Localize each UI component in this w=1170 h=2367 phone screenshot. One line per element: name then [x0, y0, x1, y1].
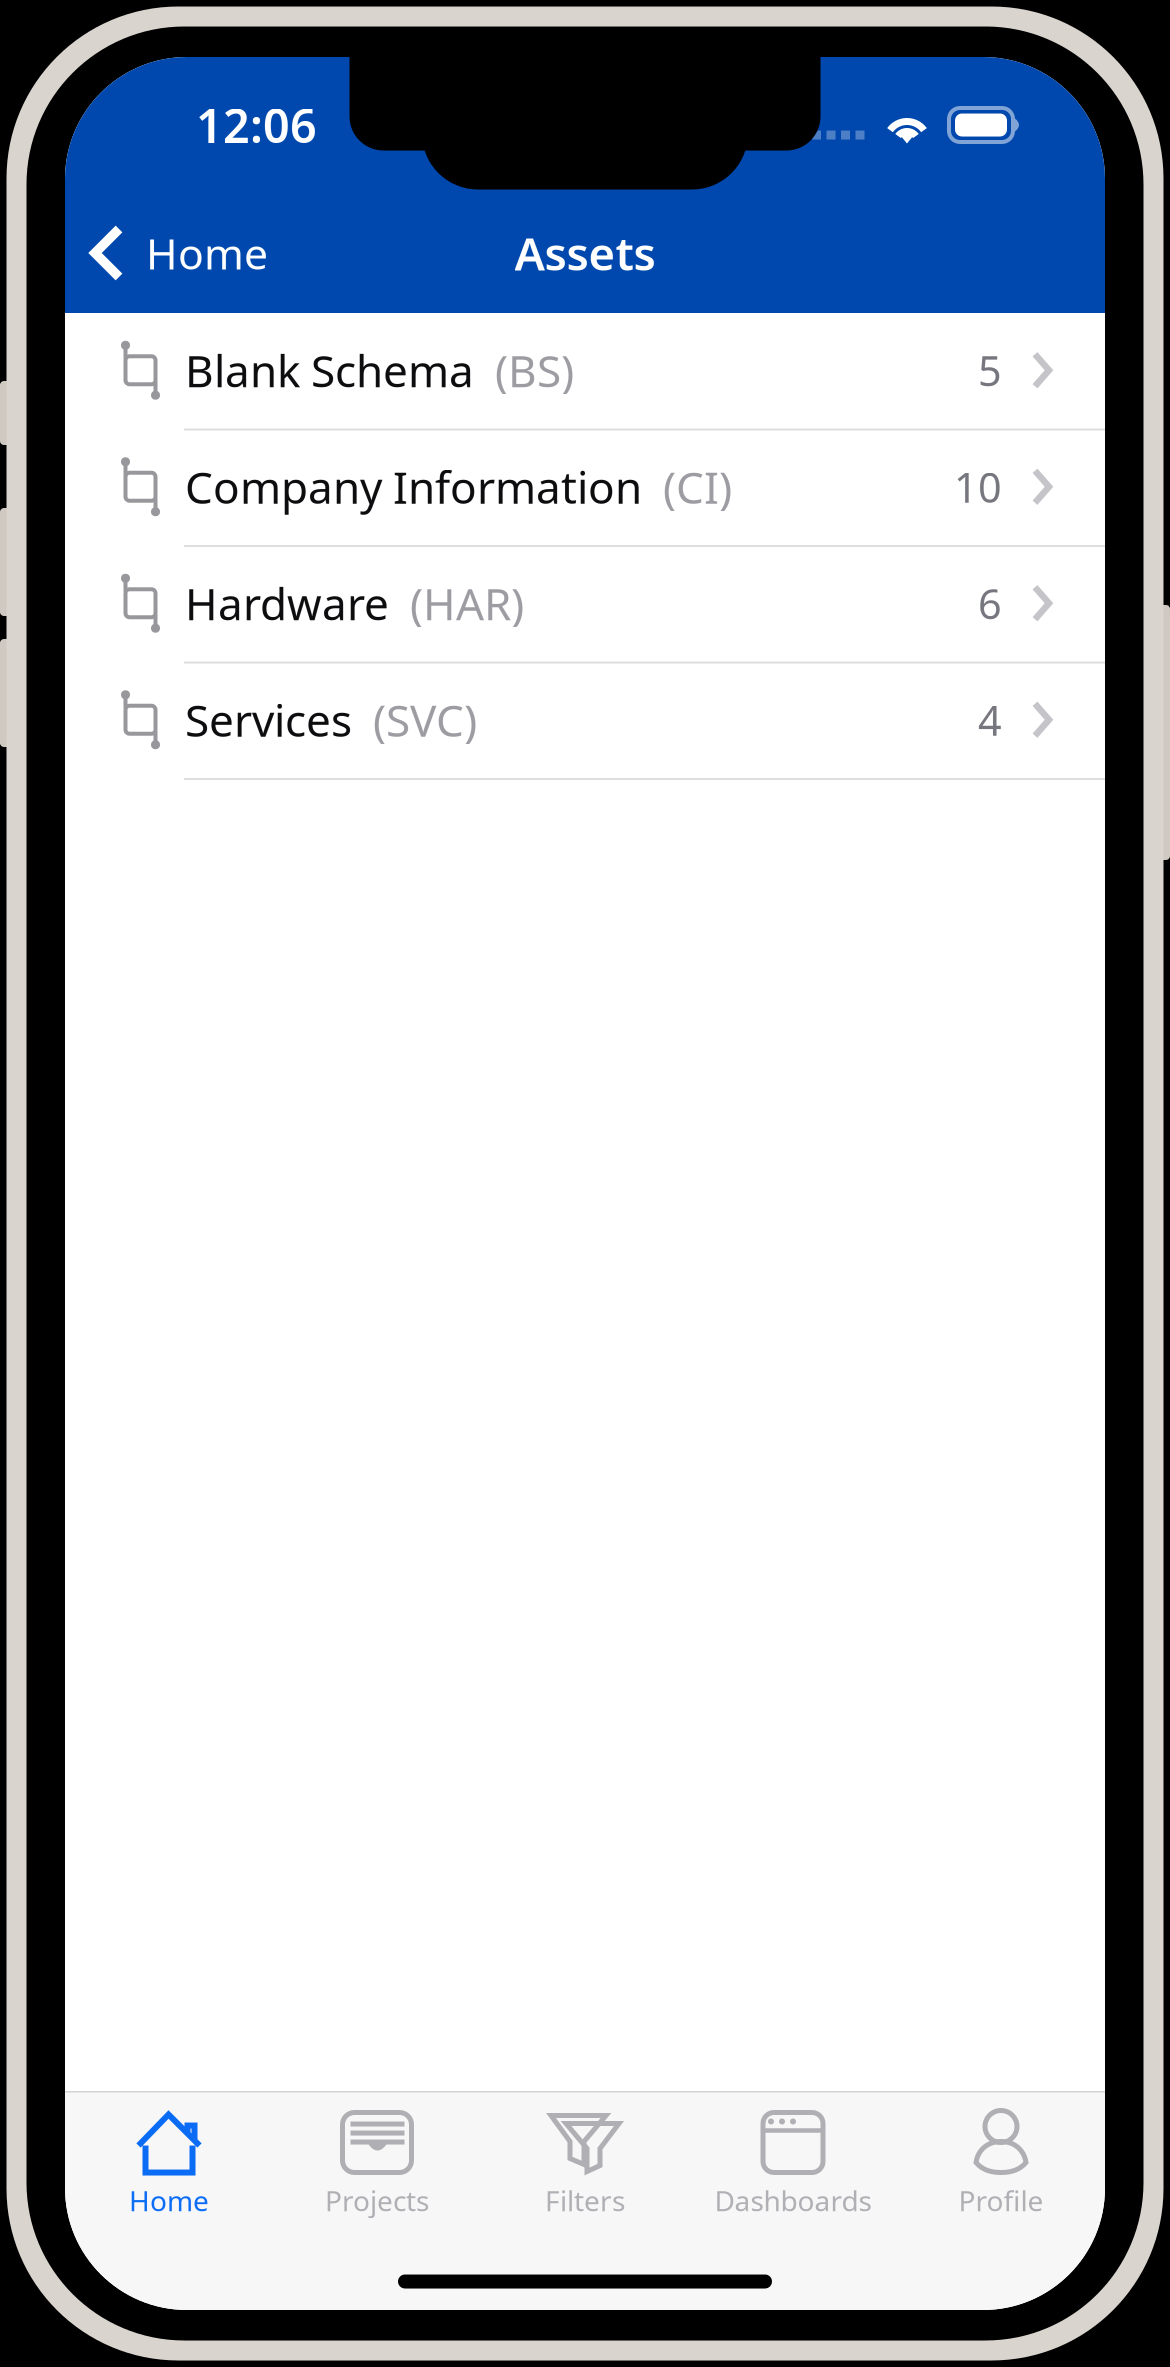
button[interactable]: Blank Schema: [65, 312, 1105, 428]
button[interactable]: Home: [65, 2092, 273, 2240]
button[interactable]: Hardware: [65, 545, 1105, 661]
staticText: Home: [146, 225, 268, 281]
button[interactable]: Services: [65, 661, 1105, 778]
staticText: 5: [978, 343, 1002, 398]
staticText: Dashboards: [714, 2182, 871, 2219]
button[interactable]: Home: [65, 193, 286, 313]
staticText: Blank Schema: [185, 341, 474, 399]
staticText: Services: [185, 690, 352, 749]
staticText: Assets: [514, 223, 655, 283]
staticText: Home: [129, 2182, 209, 2219]
button[interactable]: Projects: [273, 2092, 481, 2240]
staticText: Projects: [325, 2182, 429, 2219]
staticText: 12:06: [196, 94, 317, 156]
button[interactable]: Filters: [481, 2092, 689, 2240]
staticText: Filters: [545, 2182, 625, 2219]
staticText: 4: [978, 692, 1002, 747]
staticText: Company Information: [185, 457, 642, 516]
staticText: (SVC): [373, 690, 477, 749]
staticText: (CI): [663, 457, 732, 516]
staticText: 6: [978, 576, 1002, 631]
button[interactable]: Company Information: [65, 428, 1105, 545]
button[interactable]: Dashboards: [689, 2092, 897, 2240]
staticText: (BS): [495, 341, 574, 399]
staticText: (HAR): [410, 574, 524, 632]
staticText: Profile: [958, 2182, 1043, 2219]
staticText: 10: [954, 459, 1002, 514]
button[interactable]: Profile: [897, 2092, 1105, 2240]
staticText: Hardware: [185, 574, 389, 632]
